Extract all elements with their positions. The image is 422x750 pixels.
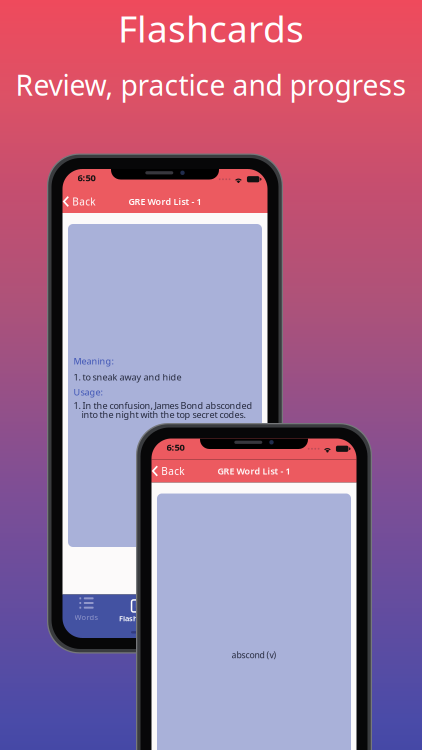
- staticText: Usage:: [73, 386, 102, 398]
- staticText: GRE Word List - 1: [217, 465, 290, 477]
- staticText: GRE Word List - 1: [128, 195, 201, 208]
- button[interactable]: Words: [66, 597, 106, 641]
- staticText: 1. to sneak away and hide: [73, 371, 181, 383]
- button[interactable]: Back: [62, 191, 101, 212]
- button[interactable]: Flashcards: [118, 597, 158, 641]
- staticText: 6:50: [77, 171, 95, 184]
- staticText: Meaning:: [73, 355, 113, 367]
- staticText: Words: [74, 612, 98, 622]
- staticText: Flashcards: [119, 613, 158, 623]
- staticText: 6:50: [166, 441, 184, 454]
- staticText: abscond (v): [231, 649, 276, 661]
- button[interactable]: Back: [151, 460, 190, 482]
- staticText: Review, practice and progress: [15, 65, 406, 104]
- staticText: Flashcards: [118, 3, 304, 53]
- staticText: Back: [72, 195, 95, 208]
- staticText: 1. In the confusion, James Bond absconde…: [73, 399, 252, 411]
- staticText: Back: [161, 464, 184, 478]
- staticText: into the night with the top secret codes…: [73, 408, 245, 421]
